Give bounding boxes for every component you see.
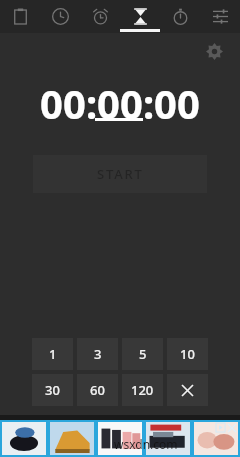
staticText: 00:00:00 [40, 76, 200, 130]
button[interactable]: 5 [122, 338, 163, 370]
button[interactable]: Tasks [0, 0, 40, 33]
staticText: 120 [131, 381, 154, 399]
staticText: 30 [45, 381, 60, 399]
staticText: 1 [49, 345, 57, 363]
button[interactable]: Timer [120, 0, 160, 33]
button[interactable]: Alarm [80, 0, 120, 33]
staticText: 60 [90, 381, 105, 399]
button[interactable]: 1 [32, 338, 73, 370]
button[interactable]: 10 [167, 338, 208, 370]
button[interactable]: 120 [122, 374, 163, 406]
staticText: START [97, 165, 144, 183]
staticText: 3 [94, 345, 102, 363]
button[interactable]: 3 [77, 338, 118, 370]
button[interactable]: Settings [201, 38, 227, 64]
button[interactable]: 60 [77, 374, 118, 406]
button[interactable]: Clear [167, 374, 208, 406]
button[interactable]: 30 [32, 374, 73, 406]
staticText: 10 [180, 345, 195, 363]
staticText: wsxdn.com [114, 436, 178, 452]
button[interactable]: Stopwatch [160, 0, 200, 33]
staticText: 5 [139, 345, 147, 363]
button[interactable]: Advertisement [0, 420, 240, 457]
button[interactable]: Settings [200, 0, 240, 33]
button[interactable]: World clock [40, 0, 80, 33]
